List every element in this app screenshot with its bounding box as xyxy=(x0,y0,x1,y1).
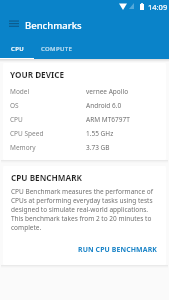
staticText: vernee Apollo xyxy=(86,87,129,96)
staticText: CPU xyxy=(11,45,24,53)
staticText: Benchmarks xyxy=(25,19,82,32)
staticText: Memory xyxy=(10,143,36,152)
staticText: CPU BENCHMARK xyxy=(11,172,83,183)
button[interactable]: RUN CPU BENCHMARK xyxy=(77,240,158,258)
staticText: Android 6.0 xyxy=(86,101,122,110)
staticText: COMPUTE xyxy=(41,45,73,53)
button[interactable]: Open navigation drawer xyxy=(0,10,27,37)
staticText: YOUR DEVICE xyxy=(10,69,65,80)
button[interactable]: COMPUTE xyxy=(34,41,79,59)
staticText: 3.73 GB xyxy=(86,143,110,152)
button[interactable]: CPU xyxy=(0,41,34,59)
staticText: 1.55 GHz xyxy=(86,129,114,138)
staticText: CPU Speed xyxy=(10,129,44,138)
staticText: Model xyxy=(10,87,30,96)
staticText: 14:09 xyxy=(148,2,168,12)
staticText: CPU xyxy=(10,115,23,124)
staticText: ARM MT6797T xyxy=(86,115,130,124)
staticText: OS xyxy=(10,101,19,110)
staticText: RUN CPU BENCHMARK xyxy=(78,245,157,254)
staticText: CPU Benchmark measures the performance o… xyxy=(11,187,158,232)
